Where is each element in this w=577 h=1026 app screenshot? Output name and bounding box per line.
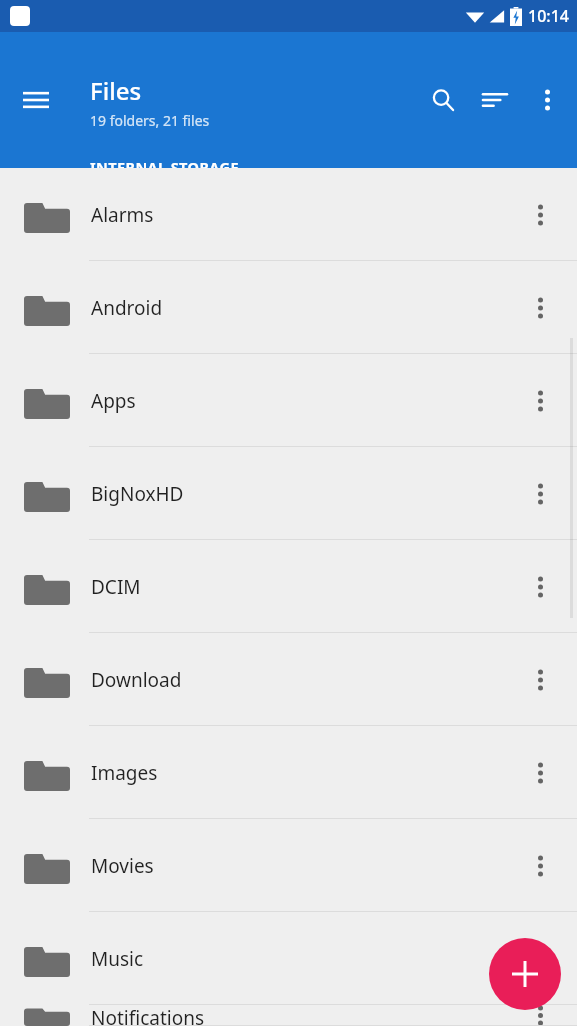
button[interactable]: Alarms bbox=[0, 168, 577, 261]
staticText: BigNoxHD bbox=[91, 481, 512, 507]
button[interactable]: More options for Images bbox=[512, 745, 568, 801]
button[interactable]: More options for Apps bbox=[512, 373, 568, 429]
button[interactable]: Apps bbox=[0, 354, 577, 447]
button[interactable]: More options for Notifications bbox=[512, 1005, 568, 1026]
staticText: Notifications bbox=[91, 1005, 512, 1026]
button[interactable]: More options for BigNoxHD bbox=[512, 466, 568, 522]
button[interactable]: Open navigation drawer bbox=[10, 74, 62, 126]
staticText: 10:14 bbox=[528, 5, 569, 27]
staticText: Files bbox=[90, 74, 142, 107]
staticText: INTERNAL STORAGE bbox=[90, 157, 239, 177]
button[interactable]: More options for Download bbox=[512, 652, 568, 708]
button[interactable]: Search bbox=[417, 74, 469, 126]
staticText: Alarms bbox=[91, 202, 512, 228]
button[interactable]: More options for Music bbox=[512, 931, 568, 987]
staticText: Download bbox=[91, 667, 512, 693]
button[interactable]: Download bbox=[0, 633, 577, 726]
button[interactable]: More options for Android bbox=[512, 280, 568, 336]
button[interactable]: Notifications bbox=[0, 1005, 577, 1026]
staticText: Movies bbox=[91, 853, 512, 879]
staticText: Android bbox=[91, 295, 512, 321]
button[interactable]: More options for DCIM bbox=[512, 559, 568, 615]
staticText: DCIM bbox=[91, 574, 512, 600]
button[interactable]: Movies bbox=[0, 819, 577, 912]
button[interactable]: More options bbox=[521, 74, 573, 126]
button[interactable]: More options for Movies bbox=[512, 838, 568, 894]
staticText: 19 folders, 21 files bbox=[90, 111, 210, 130]
button[interactable]: DCIM bbox=[0, 540, 577, 633]
button[interactable]: More options for Alarms bbox=[512, 187, 568, 243]
button[interactable]: Images bbox=[0, 726, 577, 819]
staticText: Apps bbox=[91, 388, 512, 414]
staticText: Music bbox=[91, 946, 512, 972]
button[interactable]: Sort bbox=[469, 74, 521, 126]
button[interactable]: Add bbox=[489, 938, 561, 1010]
button[interactable]: Music bbox=[0, 912, 577, 1005]
button[interactable]: Android bbox=[0, 261, 577, 354]
staticText: Images bbox=[91, 760, 512, 786]
button[interactable]: BigNoxHD bbox=[0, 447, 577, 540]
